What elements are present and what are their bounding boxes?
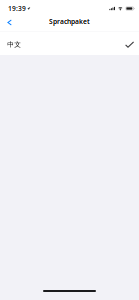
button[interactable]: 中文 [0,31,139,55]
staticText: 19:39 [8,4,26,13]
button[interactable]: Back [0,14,20,31]
staticText: 中文 [7,40,21,49]
staticText: Sprachpaket [49,17,90,26]
